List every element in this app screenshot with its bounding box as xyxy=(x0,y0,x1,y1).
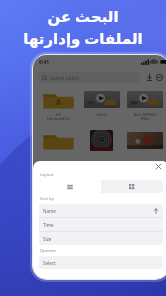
button[interactable] xyxy=(125,129,164,152)
button[interactable]: Size xyxy=(39,232,163,245)
staticText: Layout xyxy=(40,172,54,178)
staticText: Size xyxy=(43,236,52,242)
staticText: Time xyxy=(43,222,54,228)
button[interactable]: Time xyxy=(39,218,163,231)
button[interactable]: Close xyxy=(154,162,163,171)
button[interactable]: Name xyxy=(39,204,163,217)
button[interactable]: Ulimei xyxy=(82,88,121,121)
button[interactable]: GO FacebookFLIx xyxy=(38,88,78,126)
button[interactable]: More options xyxy=(154,72,164,82)
button[interactable] xyxy=(82,129,121,152)
staticText: Nr.to-99500bt IFJbv xyxy=(133,112,157,122)
button[interactable]: Nr.to-99500bt IFJbv xyxy=(125,88,164,126)
staticText: Name xyxy=(43,208,56,214)
button[interactable]: Search Leidos xyxy=(38,72,140,83)
button[interactable] xyxy=(38,129,78,152)
button[interactable]: Grid layout xyxy=(101,180,163,193)
staticText: Sort by xyxy=(40,196,54,202)
button[interactable]: Download xyxy=(144,72,154,82)
staticText: البحث عن xyxy=(47,6,119,26)
staticText: Operate xyxy=(40,248,57,254)
staticText: Select xyxy=(43,260,56,266)
button[interactable]: List layout xyxy=(39,180,101,193)
staticText: الملفات وإدارتها xyxy=(23,28,143,48)
staticText: Search Leidos xyxy=(50,75,80,81)
staticText: 9:41 xyxy=(39,59,49,66)
staticText: Ulimei xyxy=(96,112,107,117)
staticText: GO FacebookFLIx xyxy=(47,112,70,122)
button[interactable]: Select xyxy=(39,256,163,269)
